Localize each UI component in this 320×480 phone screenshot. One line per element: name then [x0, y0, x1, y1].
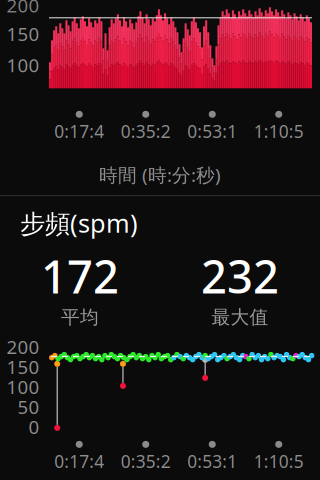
staticText: 1:10:5 — [254, 120, 304, 143]
staticText: 0:53:1 — [187, 450, 237, 473]
staticText: 時間 (時:分:秒) — [99, 162, 221, 187]
staticText: 0:17:4 — [54, 120, 104, 143]
staticText: 100 — [6, 53, 39, 77]
staticText: 0 — [28, 414, 39, 439]
staticText: 平均 — [61, 306, 99, 329]
staticText: 0:35:2 — [121, 120, 171, 143]
staticText: 100 — [6, 374, 39, 399]
staticText: 1:10:5 — [254, 450, 304, 473]
staticText: 0:17:4 — [54, 450, 104, 473]
staticText: 0:35:2 — [121, 450, 171, 473]
staticText: 172 — [41, 246, 119, 306]
staticText: 150 — [6, 21, 39, 46]
staticText: 232 — [201, 246, 279, 306]
staticText: 50 — [17, 394, 39, 419]
staticText: 200 — [6, 0, 39, 18]
staticText: 200 — [6, 334, 39, 359]
staticText: 0:53:1 — [187, 120, 237, 143]
staticText: 150 — [6, 354, 39, 379]
staticText: 最大值 — [211, 306, 268, 329]
staticText: 步頻(spm) — [20, 206, 138, 240]
